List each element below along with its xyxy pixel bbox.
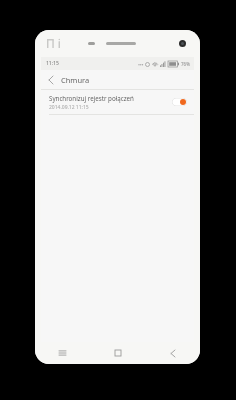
staticText: Synchronizuj rejestr połączeń	[49, 94, 134, 102]
staticText: Chmura	[61, 75, 90, 85]
button[interactable]: Back	[41, 70, 61, 89]
button[interactable]: Toggle sync	[172, 98, 187, 106]
button[interactable]: Back	[145, 342, 200, 364]
button[interactable]: Home	[90, 342, 145, 364]
staticText: 76%	[181, 61, 190, 67]
button[interactable]: Menu	[35, 342, 90, 364]
staticText: 11:15	[46, 60, 59, 67]
button[interactable]: Synchronizuj rejestr połączeń	[41, 90, 194, 114]
staticText: 2014.09.12 11:15	[49, 104, 89, 111]
